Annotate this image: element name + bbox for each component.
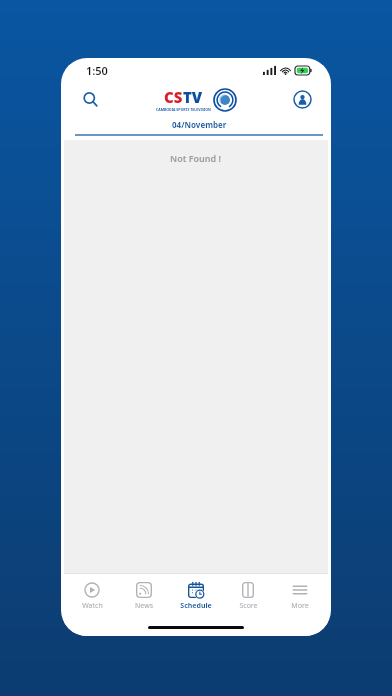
staticText: Score <box>239 601 258 611</box>
button[interactable]: Profile <box>288 85 316 113</box>
button[interactable]: Score <box>224 580 272 613</box>
button[interactable]: 04/November <box>70 116 328 139</box>
staticText: TV <box>183 87 203 107</box>
button[interactable]: Search <box>76 85 104 113</box>
staticText: CS <box>164 87 183 107</box>
staticText: More <box>291 601 309 611</box>
staticText: Not Found ! <box>170 152 222 164</box>
button[interactable]: Watch <box>68 580 116 613</box>
staticText: CAMBODIA SPORTS TELEVISION <box>156 107 211 112</box>
staticText: Schedule <box>180 601 212 611</box>
button[interactable]: More <box>276 580 324 613</box>
staticText: 1:50 <box>86 63 108 78</box>
button[interactable]: News <box>120 580 168 613</box>
staticText: News <box>135 601 153 611</box>
button[interactable]: Schedule <box>172 580 220 613</box>
staticText: Watch <box>82 601 103 611</box>
staticText: 04/November <box>172 119 227 130</box>
